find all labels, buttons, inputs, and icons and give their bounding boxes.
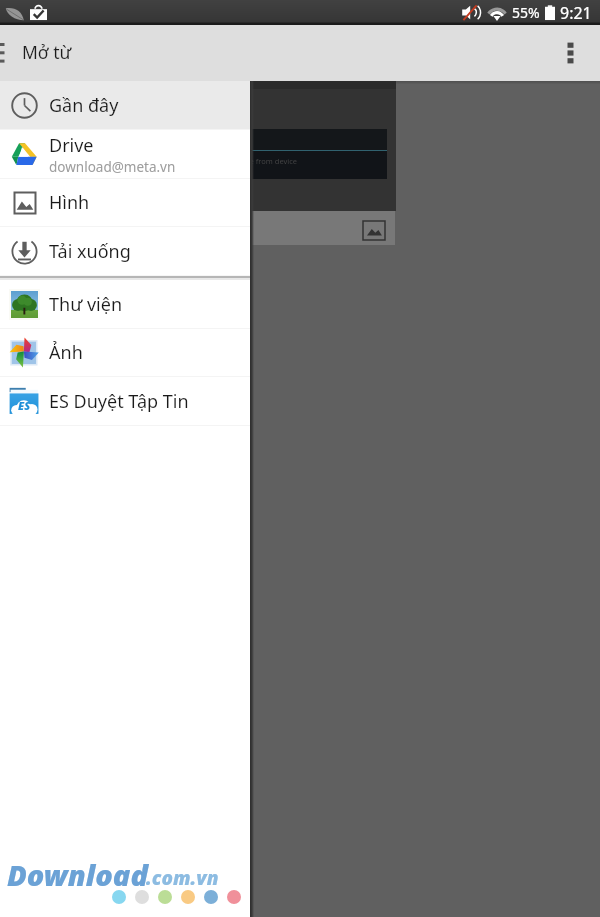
- staticText: ES: [18, 398, 31, 413]
- button[interactable]: Gần đây: [0, 81, 251, 129]
- staticText: 9:21: [560, 2, 592, 24]
- staticText: Hình: [49, 190, 90, 215]
- staticText: ES Duyệt Tập Tin: [49, 389, 189, 414]
- button[interactable]: Ảnh: [0, 329, 251, 376]
- button[interactable]: Tải xuống: [0, 227, 251, 275]
- button[interactable]: Thư viện: [0, 280, 251, 328]
- button[interactable]: More options: [552, 25, 600, 81]
- button[interactable]: Drive: [0, 130, 251, 178]
- staticText: Drive: [49, 133, 94, 158]
- staticText: Download: [7, 855, 148, 894]
- staticText: Gần đây: [49, 93, 119, 118]
- button[interactable]: ES: [0, 377, 251, 425]
- staticText: Ảnh: [49, 340, 83, 365]
- button[interactable]: Open navigation drawer: [0, 25, 14, 81]
- staticText: Thư viện: [49, 292, 123, 317]
- staticText: Tải xuống: [49, 239, 131, 264]
- staticText: download@meta.vn: [49, 158, 176, 176]
- staticText: 55%: [512, 3, 540, 22]
- staticText: .com.vn: [146, 865, 219, 891]
- staticText: Mở từ: [22, 40, 72, 64]
- button[interactable]: Hình: [0, 179, 251, 226]
- staticText: er: [245, 169, 253, 179]
- staticText: ge from device: [245, 156, 298, 166]
